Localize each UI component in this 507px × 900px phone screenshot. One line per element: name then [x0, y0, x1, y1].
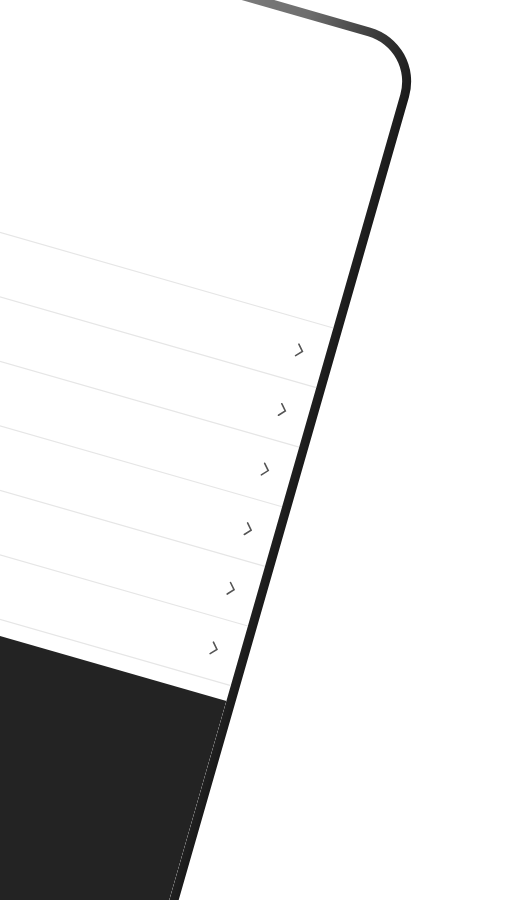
button[interactable]: Take control of your money [0, 0, 507, 900]
